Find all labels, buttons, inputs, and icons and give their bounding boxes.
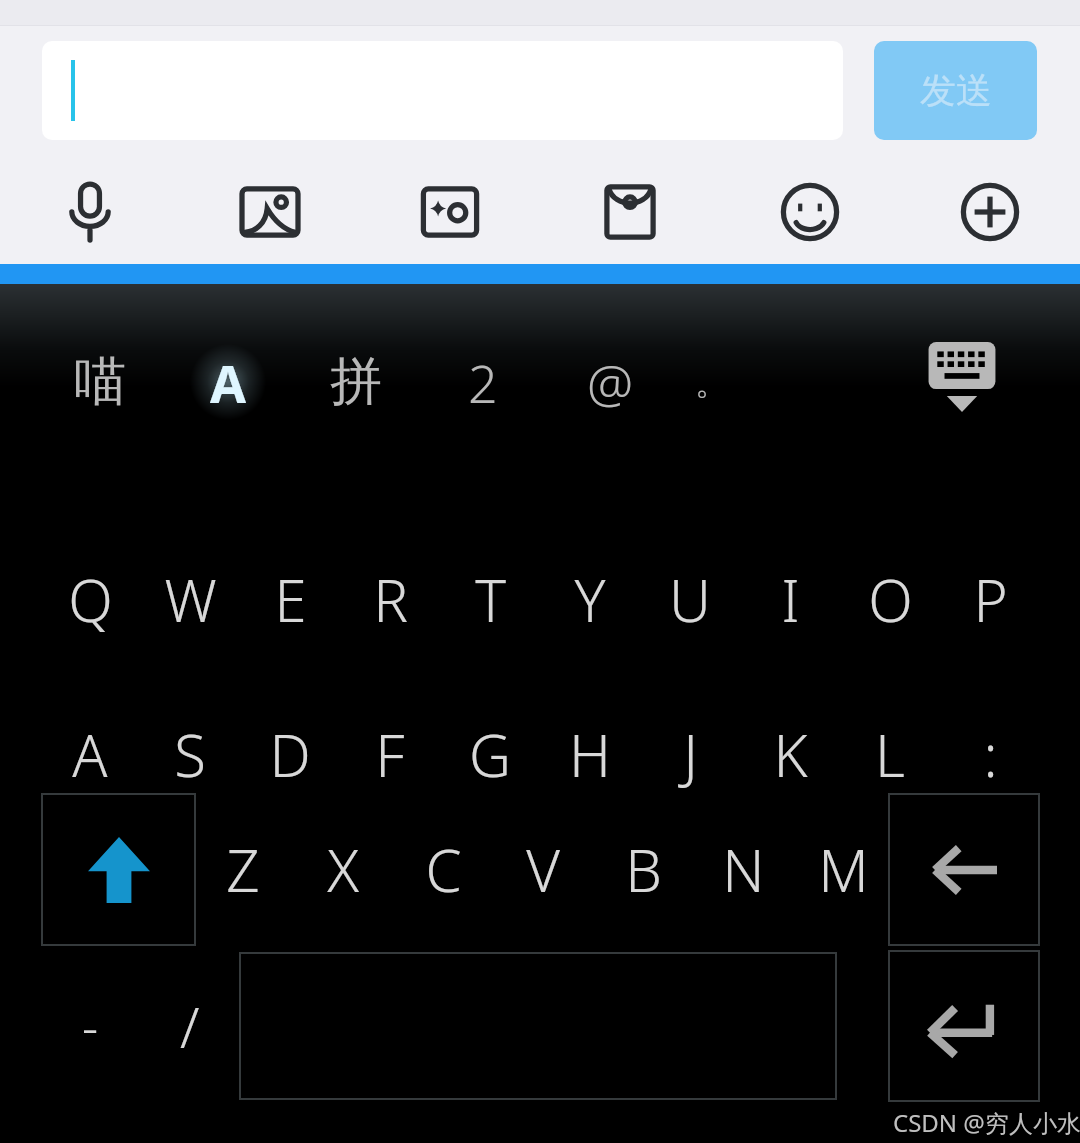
- staticText: @: [587, 347, 634, 418]
- button[interactable]: O: [840, 524, 940, 674]
- staticText: 喵: [74, 349, 126, 415]
- staticText: 2: [468, 347, 498, 418]
- button[interactable]: -: [40, 950, 140, 1102]
- button[interactable]: K: [740, 679, 840, 829]
- button[interactable]: 发送: [874, 41, 1037, 140]
- button[interactable]: G: [440, 679, 540, 829]
- staticText: U: [669, 560, 711, 639]
- button[interactable]: /: [140, 950, 240, 1102]
- button[interactable]: N: [693, 794, 793, 944]
- button[interactable]: A: [40, 679, 140, 829]
- button[interactable]: More: [945, 162, 1035, 262]
- button[interactable]: H: [540, 679, 640, 829]
- staticText: D: [269, 715, 311, 794]
- staticText: /: [180, 988, 200, 1064]
- button[interactable]: F: [340, 679, 440, 829]
- staticText: T: [475, 560, 506, 639]
- button[interactable]: U: [640, 524, 740, 674]
- staticText: X: [327, 830, 359, 909]
- button[interactable]: 。: [656, 324, 768, 440]
- button[interactable]: :: [940, 679, 1040, 829]
- staticText: :: [983, 715, 998, 794]
- button[interactable]: Red packet: [585, 162, 675, 262]
- staticText: E: [274, 560, 307, 639]
- button[interactable]: I: [740, 524, 840, 674]
- button[interactable]: Q: [40, 524, 140, 674]
- staticText: F: [375, 715, 405, 794]
- button[interactable]: T: [440, 524, 540, 674]
- staticText: Z: [226, 830, 260, 909]
- staticText: -: [82, 992, 99, 1060]
- staticText: J: [683, 715, 698, 794]
- button[interactable]: Hide keyboard: [916, 330, 1008, 440]
- button[interactable]: W: [140, 524, 240, 674]
- staticText: 。: [695, 361, 729, 404]
- staticText: L: [875, 715, 905, 794]
- staticText: C: [425, 830, 462, 909]
- staticText: 拼: [330, 349, 382, 415]
- staticText: P: [973, 560, 1008, 639]
- button[interactable]: L: [840, 679, 940, 829]
- button[interactable]: Space: [239, 952, 837, 1100]
- staticText: Q: [68, 560, 113, 639]
- staticText: B: [625, 830, 662, 909]
- staticText: CSDN @穷人小水滴: [893, 1106, 1080, 1139]
- button[interactable]: M: [793, 794, 893, 944]
- staticText: V: [526, 830, 560, 909]
- staticText: I: [781, 560, 800, 639]
- button[interactable]: Shift: [41, 793, 196, 946]
- button[interactable]: B: [593, 794, 693, 944]
- button[interactable]: A: [172, 324, 284, 440]
- button[interactable]: R: [340, 524, 440, 674]
- button[interactable]: P: [940, 524, 1040, 674]
- button[interactable]: Camera: [405, 162, 495, 262]
- button[interactable]: 喵: [44, 324, 156, 440]
- button[interactable]: Y: [540, 524, 640, 674]
- button[interactable]: V: [493, 794, 593, 944]
- button[interactable]: 2: [427, 324, 539, 440]
- button[interactable]: X: [293, 794, 393, 944]
- staticText: G: [469, 715, 511, 794]
- button[interactable]: 拼: [300, 324, 412, 440]
- button[interactable]: E: [240, 524, 340, 674]
- button[interactable]: S: [140, 679, 240, 829]
- staticText: 发送: [920, 68, 992, 113]
- button[interactable]: Voice: [45, 162, 135, 262]
- staticText: W: [164, 560, 217, 639]
- staticText: Y: [574, 560, 606, 639]
- staticText: A: [210, 347, 246, 418]
- staticText: K: [773, 715, 808, 794]
- button[interactable]: Backspace: [888, 793, 1040, 946]
- button[interactable]: Enter: [888, 950, 1040, 1102]
- staticText: H: [569, 715, 611, 794]
- button[interactable]: Photo: [225, 162, 315, 262]
- button[interactable]: Z: [193, 794, 293, 944]
- button[interactable]: [42, 41, 843, 140]
- button[interactable]: D: [240, 679, 340, 829]
- button[interactable]: @: [554, 324, 666, 440]
- staticText: O: [868, 560, 913, 639]
- button[interactable]: C: [393, 794, 493, 944]
- button[interactable]: Emoji: [765, 162, 855, 262]
- staticText: M: [818, 830, 869, 909]
- staticText: N: [722, 830, 765, 909]
- staticText: R: [373, 560, 408, 639]
- staticText: S: [174, 715, 206, 794]
- staticText: A: [72, 715, 108, 794]
- button[interactable]: J: [640, 679, 740, 829]
